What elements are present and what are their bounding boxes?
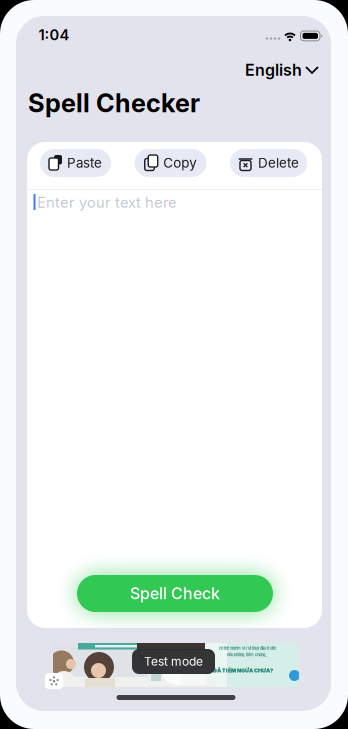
- button[interactable]: English: [245, 61, 319, 79]
- staticText: Copy: [163, 155, 196, 171]
- staticText: Enter your text here: [37, 194, 177, 211]
- button[interactable]: Spell Check: [77, 575, 273, 612]
- staticText: ĐÃ TIÊM NGỪA CHƯA?: [213, 667, 273, 674]
- staticText: Paste: [67, 155, 102, 171]
- staticText: Delete: [258, 155, 299, 171]
- staticText: Test mode: [144, 654, 203, 669]
- staticText: có thể nhiễm vi rút thuỷ đậu trước: [219, 646, 276, 651]
- staticText: Spell Checker: [28, 88, 200, 118]
- button[interactable]: Delete: [230, 149, 307, 177]
- button[interactable]: Copy: [134, 149, 206, 177]
- staticText: 1:04: [38, 26, 69, 44]
- button[interactable]: Ad choices: [45, 673, 63, 689]
- staticText: Spell Check: [130, 584, 220, 603]
- button[interactable]: Paste: [40, 149, 111, 177]
- button[interactable]: Advertisement: [53, 643, 299, 687]
- staticText: English: [245, 61, 302, 79]
- staticText: nếu không tiêm chủng,: [227, 652, 267, 657]
